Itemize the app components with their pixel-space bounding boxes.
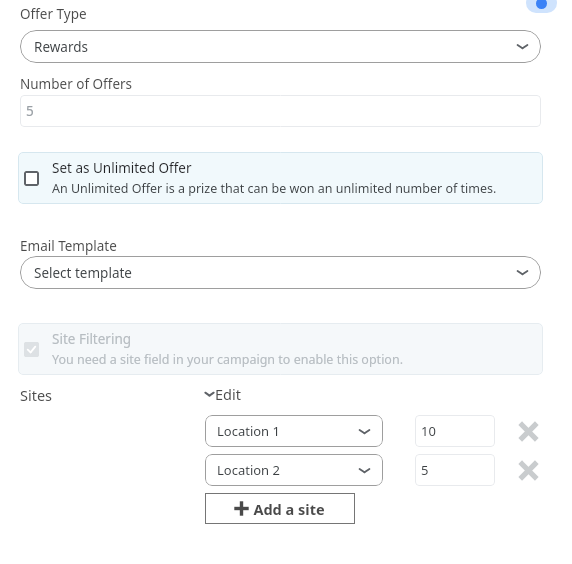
- button[interactable]: Edit: [204, 384, 241, 404]
- staticText: Sites: [20, 385, 53, 405]
- button[interactable]: Set as Unlimited Offer: [18, 152, 543, 204]
- button[interactable]: Select template: [20, 256, 541, 289]
- staticText: Select template: [34, 264, 132, 282]
- button[interactable]: 5: [20, 95, 541, 127]
- button[interactable]: 5: [415, 454, 495, 486]
- staticText: 10: [421, 422, 436, 440]
- button[interactable]: Location 2: [205, 454, 383, 486]
- staticText: You need a site field in your campaign t…: [52, 351, 403, 368]
- staticText: Add a site: [253, 499, 325, 519]
- staticText: Site Filtering: [52, 330, 132, 348]
- button[interactable]: Remove site: [516, 419, 540, 443]
- button[interactable]: Rewards: [20, 30, 541, 63]
- staticText: 5: [421, 461, 429, 479]
- staticText: An Unlimited Offer is a prize that can b…: [52, 180, 497, 197]
- button[interactable]: 10: [415, 415, 495, 447]
- button[interactable]: Remove site: [516, 458, 540, 482]
- staticText: Location 2: [217, 461, 280, 479]
- staticText: Email Template: [20, 237, 117, 255]
- button[interactable]: Site Filtering: [18, 323, 543, 375]
- staticText: Offer Type: [20, 5, 87, 23]
- staticText: Location 1: [217, 422, 280, 440]
- staticText: 5: [26, 102, 34, 120]
- staticText: Edit: [215, 384, 241, 404]
- staticText: Rewards: [34, 38, 88, 56]
- staticText: Number of Offers: [20, 75, 133, 93]
- button[interactable]: Location 1: [205, 415, 383, 447]
- button[interactable]: Toggle: [526, 0, 557, 13]
- button[interactable]: Add a site: [205, 493, 355, 524]
- staticText: Set as Unlimited Offer: [52, 159, 192, 177]
